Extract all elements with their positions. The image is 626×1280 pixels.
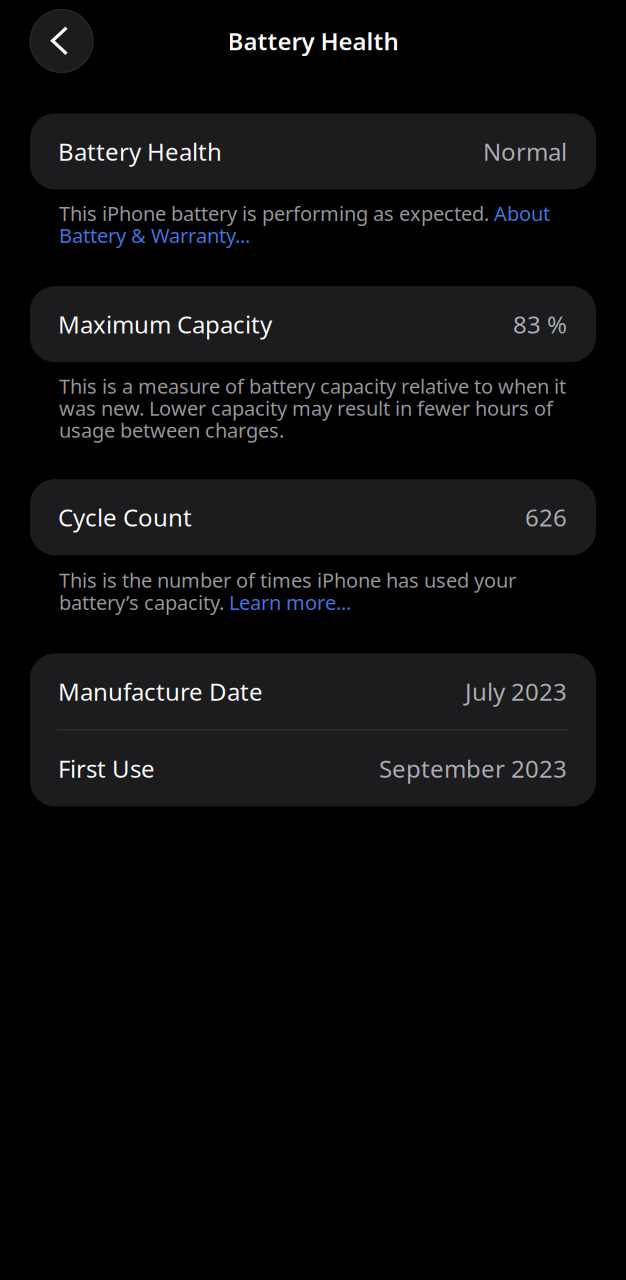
staticText: Battery Health xyxy=(58,136,222,167)
staticText: First Use xyxy=(58,752,155,784)
staticText: Manufacture Date xyxy=(58,675,263,707)
staticText: 626 xyxy=(525,501,567,533)
staticText: Battery Health xyxy=(227,25,398,57)
staticText: Cycle Count xyxy=(58,501,192,533)
button[interactable]: Maximum Capacity xyxy=(0,286,626,362)
staticText: September 2023 xyxy=(379,752,567,784)
button[interactable]: Back xyxy=(30,9,93,72)
staticText: Maximum Capacity xyxy=(58,308,272,340)
staticText: 83 % xyxy=(513,308,567,340)
button[interactable]: Battery Health xyxy=(0,113,626,189)
button[interactable]: First Use xyxy=(30,730,596,806)
staticText: July 2023 xyxy=(465,675,567,707)
button[interactable]: Manufacture Date xyxy=(30,653,596,729)
staticText: This is a measure of battery capacity re… xyxy=(59,373,566,443)
staticText: This iPhone battery is performing as exp… xyxy=(59,200,550,249)
staticText: This is the number of times iPhone has u… xyxy=(59,567,516,615)
staticText: Normal xyxy=(483,136,567,167)
button[interactable]: Cycle Count xyxy=(0,479,626,555)
